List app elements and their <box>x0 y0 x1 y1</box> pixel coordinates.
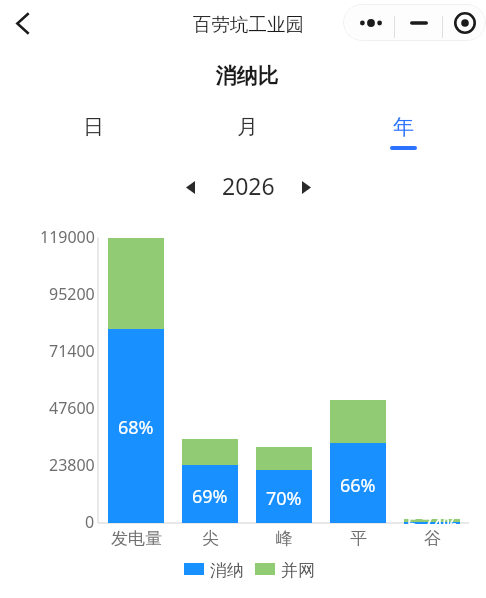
staticText: 119000 <box>40 226 95 248</box>
button[interactable]: 消纳 <box>184 560 244 581</box>
staticText: 年 <box>393 114 414 140</box>
staticText: 消纳比 <box>4 63 486 89</box>
staticText: 66% <box>340 473 376 498</box>
button[interactable]: 日 <box>57 114 129 162</box>
staticText: 百劳坑工业园 <box>193 13 304 36</box>
staticText: 日 <box>83 114 104 140</box>
button[interactable]: 谷 并网 <box>404 519 460 522</box>
button[interactable]: Previous year <box>172 170 208 204</box>
staticText: 尖 <box>202 528 219 549</box>
staticText: 23800 <box>49 454 95 476</box>
staticText: 峰 <box>276 528 293 549</box>
button[interactable]: More <box>350 4 391 41</box>
button[interactable]: Back <box>1 1 45 45</box>
staticText: 68% <box>118 415 154 440</box>
button[interactable]: 并网 <box>255 560 315 581</box>
staticText: 消纳 <box>210 560 244 581</box>
staticText: 69% <box>192 484 228 509</box>
staticText: 5.74% <box>407 512 458 537</box>
button[interactable]: Minimize <box>395 4 442 41</box>
button[interactable]: 平 消纳 <box>330 443 386 523</box>
button[interactable]: Next year <box>288 170 324 204</box>
staticText: 平 <box>350 528 367 549</box>
button[interactable]: 发电量 消纳 <box>108 329 164 523</box>
staticText: 47600 <box>49 397 95 419</box>
staticText: 2026 <box>222 170 275 201</box>
button[interactable]: 谷 消纳 <box>404 522 460 524</box>
button[interactable]: 月 <box>211 114 283 162</box>
button[interactable]: 年 <box>367 114 439 162</box>
staticText: 并网 <box>281 560 315 581</box>
button[interactable]: 尖 消纳 <box>182 465 238 523</box>
staticText: 发电量 <box>111 528 162 549</box>
staticText: 71400 <box>49 340 95 362</box>
button[interactable]: Close <box>443 4 486 41</box>
staticText: 0 <box>85 511 95 533</box>
button[interactable]: 峰 消纳 <box>256 470 312 523</box>
staticText: 95200 <box>49 283 95 305</box>
staticText: 月 <box>237 114 258 140</box>
staticText: 谷 <box>424 528 441 549</box>
staticText: 70% <box>266 486 302 511</box>
